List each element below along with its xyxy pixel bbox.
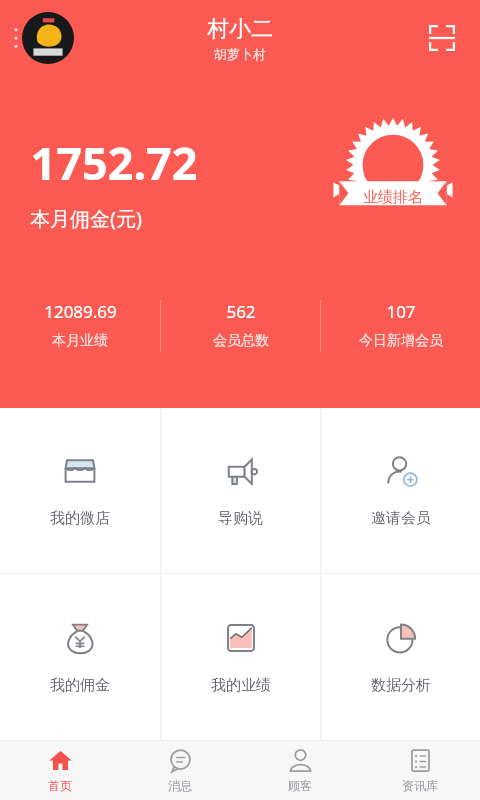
staticText: 资讯库 [402,778,438,793]
button[interactable]: 邀请会员 [321,408,480,573]
button[interactable]: 12089.69 [0,300,160,350]
staticText: 数据分析 [371,676,431,695]
staticText: 本月业绩 [52,332,108,350]
staticText: 胡萝卜村 [214,46,266,62]
staticText: 顾客 [288,778,312,793]
staticText: 我的佣金 [50,676,110,695]
button[interactable]: 数据分析 [321,574,480,740]
staticText: 12089.69 [44,300,117,323]
staticText: 562 [226,300,256,323]
staticText: 107 [386,300,416,323]
staticText: 1752.72 [30,132,198,193]
staticText: 会员总数 [213,332,269,350]
staticText: 本月佣金(元) [30,205,142,232]
staticText: 今日新增会员 [359,332,443,350]
button[interactable]: 消息 [120,741,240,800]
button[interactable]: 我的佣金 [0,574,160,740]
button[interactable]: 顾客 [240,741,360,800]
staticText: 导购说 [218,509,263,528]
button[interactable]: 导购说 [161,408,320,573]
button[interactable]: 资讯库 [360,741,480,800]
button[interactable]: 用户头像 [22,12,74,64]
staticText: 邀请会员 [371,509,431,528]
button[interactable]: 562 [161,300,320,350]
staticText: 村小二 [207,15,273,43]
button[interactable]: 我的业绩 [161,574,320,740]
staticText: 首页 [48,778,72,793]
button[interactable]: 扫一扫 [422,18,462,58]
button[interactable]: 首页 [0,741,120,800]
button[interactable]: 业绩排名 [334,118,452,230]
staticText: 我的微店 [50,509,110,528]
staticText: 业绩排名 [363,188,423,207]
button[interactable]: 107 [321,300,480,350]
button[interactable]: 我的微店 [0,408,160,573]
staticText: 消息 [168,778,192,793]
staticText: 我的业绩 [211,676,271,695]
